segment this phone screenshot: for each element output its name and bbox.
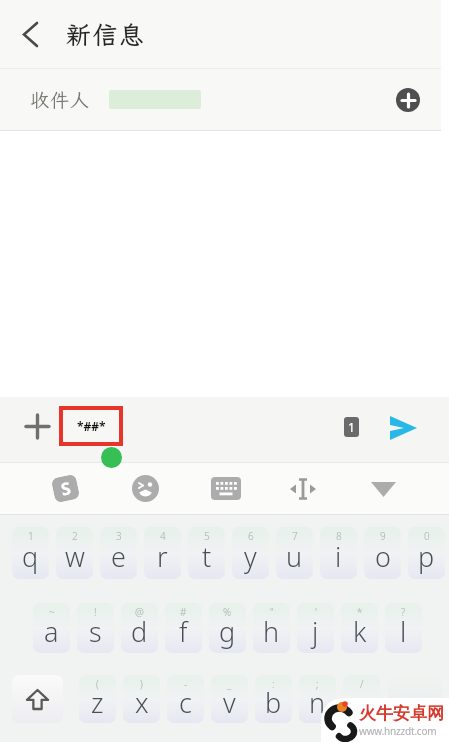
staticText: www.hnzzdt.com [359,724,437,738]
staticText: s [89,613,102,650]
button[interactable]: 1 [12,527,49,579]
staticText: ( [96,677,99,691]
staticText: 收件人 [30,87,91,112]
button[interactable] [396,88,420,112]
staticText: # [180,605,187,619]
staticText: @ [135,605,144,619]
staticText: h [263,613,280,650]
staticText: % [223,605,232,619]
button[interactable]: ' [297,603,334,653]
staticText: d [131,613,148,650]
staticText: k [353,613,367,650]
staticText: g [219,613,236,650]
staticText: m [349,684,374,721]
button[interactable]: 6 [232,527,269,579]
staticText: v [223,684,236,721]
staticText: o [375,538,391,575]
staticText: x [135,684,149,721]
button[interactable]: 3 [100,527,137,579]
button[interactable]: " [253,603,290,653]
button[interactable] [211,477,241,500]
staticText: " [270,605,274,619]
button[interactable]: % [209,603,246,653]
staticText: ; [316,677,319,691]
button[interactable] [390,416,417,440]
button[interactable]: 8 [320,527,357,579]
button[interactable]: 5 [188,527,225,579]
staticText: l [400,613,407,650]
staticText: i [335,538,342,575]
button[interactable] [24,20,52,48]
staticText: 2 [72,529,78,543]
button[interactable]: * [341,603,378,653]
staticText: ~ [49,605,55,619]
button[interactable]: 7 [276,527,313,579]
staticText: y [244,538,257,575]
button[interactable] [371,482,396,497]
staticText: 0 [424,529,430,543]
staticText: 8 [336,529,342,543]
button[interactable]: 9 [364,527,401,579]
button[interactable]: 0 [408,527,445,579]
staticText: j [312,613,319,650]
staticText: 1 [28,529,34,543]
button[interactable]: 收件人 [0,69,449,130]
staticText: : [272,677,275,691]
button[interactable]: ? [385,603,422,653]
button[interactable] [132,475,159,502]
button[interactable]: # [165,603,202,653]
staticText: a [44,613,59,650]
staticText: 新信息 [66,18,146,51]
staticText: u [286,538,303,575]
staticText: t [202,538,212,575]
staticText: c [179,684,192,721]
button[interactable]: ( [79,675,116,723]
staticText: q [22,538,39,575]
staticText: S [59,476,73,501]
staticText: * [357,605,363,619]
staticText: w [65,538,85,575]
staticText: ! [94,605,97,619]
button[interactable]: 4 [144,527,181,579]
button[interactable]: ~ [33,603,70,653]
staticText: 5 [204,529,210,543]
staticText: z [91,684,104,721]
staticText: n [309,684,326,721]
button[interactable] [388,675,442,723]
staticText: ) [140,677,143,691]
staticText: r [157,538,168,575]
button[interactable] [290,478,316,500]
staticText: ' [315,605,317,619]
button[interactable]: 2 [56,527,93,579]
button[interactable]: / [343,675,380,723]
staticText: / [360,677,364,691]
staticText: 火牛安卓网 [359,703,444,724]
staticText: e [111,538,126,575]
staticText: 6 [248,529,254,543]
button[interactable]: S [51,474,80,503]
staticText: p [418,538,435,575]
staticText: - [184,677,188,691]
staticText: f [179,613,188,650]
button[interactable]: *##* [59,406,123,446]
staticText: ? [401,605,406,619]
staticText: *##* [77,418,106,434]
staticText: _ [227,677,232,691]
button[interactable]: ; [299,675,336,723]
staticText: 3 [116,529,122,543]
button[interactable]: - [167,675,204,723]
button[interactable]: : [255,675,292,723]
button[interactable]: _ [211,675,248,723]
button[interactable]: ) [123,675,160,723]
staticText: 4 [160,529,166,543]
staticText: 7 [292,529,298,543]
staticText: b [265,684,282,721]
staticText: 9 [380,529,386,543]
button[interactable]: ! [77,603,114,653]
button[interactable] [12,675,63,723]
button[interactable] [26,415,49,438]
staticText: 1 [348,419,355,435]
button[interactable]: @ [121,603,158,653]
